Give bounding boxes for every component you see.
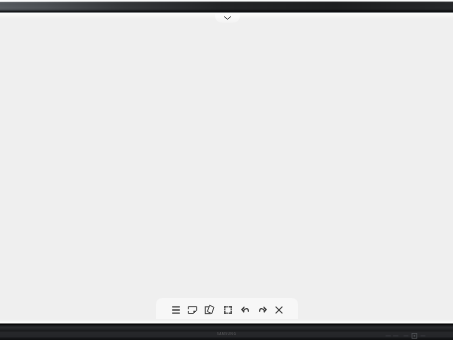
button[interactable]: Undo: [236, 298, 253, 319]
button[interactable]: Insert image: [201, 298, 218, 319]
button[interactable]: Close: [270, 298, 287, 319]
button[interactable]: Menu: [167, 298, 184, 319]
button[interactable]: Select area: [219, 298, 236, 319]
button[interactable]: Sticky note: [184, 298, 201, 319]
button[interactable]: Redo: [254, 298, 271, 319]
staticText: SAMSUNG: [217, 331, 237, 335]
button[interactable]: Expand toolbar: [215, 14, 240, 23]
